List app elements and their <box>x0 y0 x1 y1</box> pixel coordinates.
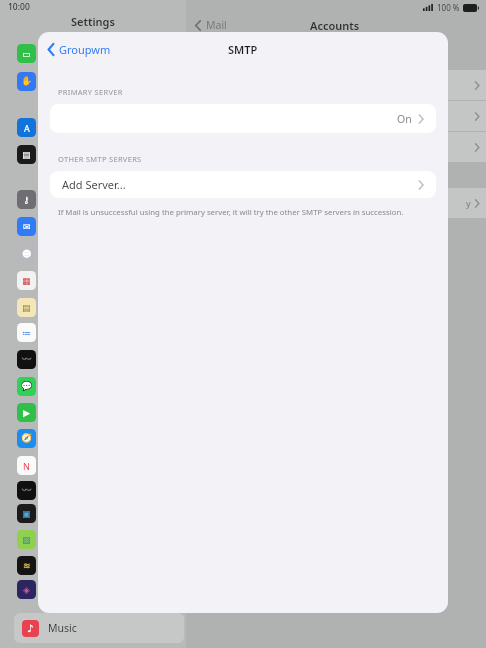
staticText: ◈ <box>23 585 30 595</box>
staticText: Add Server... <box>62 177 126 192</box>
staticText: If Mail is unsuccessful using the primar… <box>58 207 404 218</box>
staticText: ▭ <box>22 49 31 59</box>
button[interactable]: On <box>50 104 436 133</box>
staticText: 〰 <box>21 485 33 496</box>
staticText: A <box>24 122 30 134</box>
staticText: ▣ <box>22 509 31 519</box>
staticText: ▨ <box>22 535 31 545</box>
staticText: Accounts <box>310 18 360 33</box>
staticText: ▦ <box>22 276 31 286</box>
staticText: 〰 <box>21 354 33 365</box>
staticText: ▶ <box>23 408 30 418</box>
staticText: ≋ <box>23 561 31 571</box>
staticText: ⚷ <box>23 195 30 205</box>
staticText: y <box>466 197 471 209</box>
staticText: ≔ <box>22 328 31 338</box>
staticText: 10:00 <box>8 1 30 13</box>
staticText: ♪ <box>27 623 34 635</box>
staticText: 💬 <box>21 381 33 392</box>
staticText: Music <box>48 621 77 635</box>
staticText: N <box>23 460 30 472</box>
staticText: ✉ <box>23 222 31 232</box>
staticText: 100 % <box>437 2 460 13</box>
staticText: Settings <box>71 14 115 29</box>
staticText: ▤ <box>22 303 31 313</box>
staticText: SMTP <box>228 42 258 57</box>
staticText: Groupwm <box>59 42 111 57</box>
staticText: ☻ <box>22 249 32 259</box>
button[interactable]: Add Server... <box>50 171 436 198</box>
button[interactable]: Groupwm <box>44 39 114 60</box>
staticText: 🧭 <box>21 433 33 444</box>
staticText: ✋ <box>21 76 33 87</box>
staticText: Mail <box>206 18 227 32</box>
staticText: ▤ <box>22 150 31 160</box>
staticText: OTHER SMTP SERVERS <box>58 154 142 164</box>
staticText: On <box>397 112 412 126</box>
staticText: PRIMARY SERVER <box>58 87 123 97</box>
